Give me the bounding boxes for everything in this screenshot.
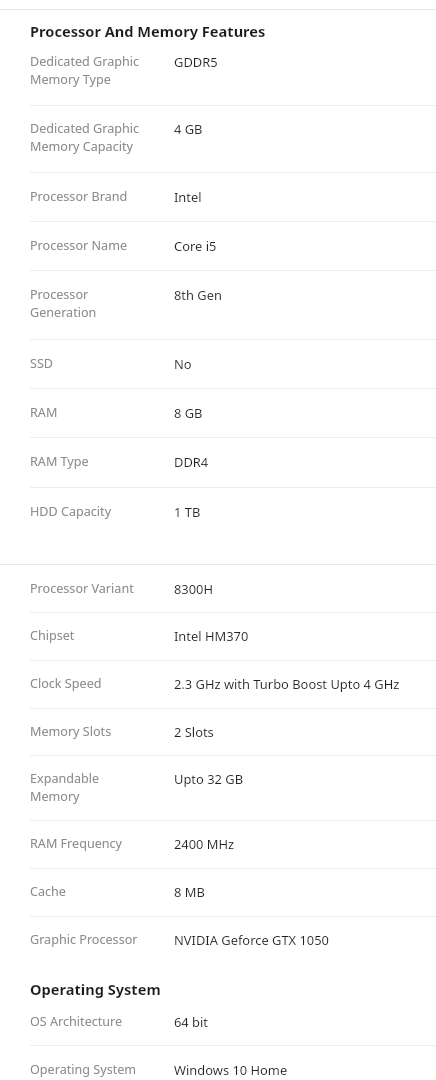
staticText: GDDR5: [174, 53, 424, 71]
staticText: NVIDIA Geforce GTX 1050: [174, 931, 424, 949]
staticText: Intel: [174, 188, 424, 206]
staticText: 2400 MHz: [174, 835, 424, 853]
button[interactable]: Processor Variant: [0, 565, 436, 612]
staticText: 2 Slots: [174, 723, 424, 741]
staticText: OS Architecture: [30, 1013, 174, 1030]
button[interactable]: Operating System: [0, 1046, 436, 1080]
staticText: Processor Variant: [30, 580, 174, 597]
button[interactable]: Dedicated Graphic Memory Type: [0, 48, 436, 105]
button[interactable]: HDD Capacity: [0, 488, 436, 536]
button[interactable]: Processor Generation: [0, 271, 436, 339]
staticText: Processor Name: [30, 237, 174, 254]
staticText: 8 MB: [174, 883, 424, 901]
staticText: Clock Speed: [30, 675, 174, 692]
button[interactable]: OS Architecture: [0, 1005, 436, 1045]
staticText: HDD Capacity: [30, 503, 174, 520]
staticText: Operating System: [30, 1061, 174, 1078]
button[interactable]: RAM: [0, 389, 436, 437]
button[interactable]: Graphic Processor: [0, 917, 436, 963]
button[interactable]: Chipset: [0, 613, 436, 660]
button[interactable]: Clock Speed: [0, 661, 436, 708]
staticText: Expandable Memory: [30, 770, 174, 805]
button[interactable]: Cache: [0, 869, 436, 916]
staticText: 8th Gen: [174, 286, 424, 304]
staticText: Dedicated Graphic Memory Type: [30, 53, 174, 88]
button[interactable]: Processor Name: [0, 222, 436, 270]
button[interactable]: Dedicated Graphic Memory Capacity: [0, 106, 436, 172]
staticText: DDR4: [174, 453, 424, 471]
staticText: Graphic Processor: [30, 931, 174, 948]
button[interactable]: SSD: [0, 340, 436, 388]
staticText: Operating System: [30, 979, 161, 999]
staticText: RAM Type: [30, 453, 174, 470]
staticText: Processor Generation: [30, 286, 174, 321]
staticText: Cache: [30, 883, 174, 900]
staticText: 2.3 GHz with Turbo Boost Upto 4 GHz: [174, 675, 424, 693]
staticText: 1 TB: [174, 503, 424, 521]
staticText: Dedicated Graphic Memory Capacity: [30, 120, 174, 155]
staticText: Core i5: [174, 237, 424, 255]
staticText: 4 GB: [174, 120, 424, 138]
button[interactable]: RAM Type: [0, 438, 436, 487]
staticText: RAM Frequency: [30, 835, 174, 852]
staticText: Intel HM370: [174, 627, 424, 645]
staticText: Chipset: [30, 627, 174, 644]
staticText: Processor And Memory Features: [30, 21, 266, 41]
button[interactable]: Processor Brand: [0, 173, 436, 221]
button[interactable]: RAM Frequency: [0, 821, 436, 868]
staticText: SSD: [30, 355, 174, 372]
staticText: 8 GB: [174, 404, 424, 422]
staticText: Windows 10 Home: [174, 1061, 424, 1079]
button[interactable]: Expandable Memory: [0, 756, 436, 820]
button[interactable]: Memory Slots: [0, 709, 436, 755]
staticText: No: [174, 355, 424, 373]
staticText: Upto 32 GB: [174, 770, 424, 788]
staticText: Processor Brand: [30, 188, 174, 205]
staticText: RAM: [30, 404, 174, 421]
staticText: 8300H: [174, 580, 424, 598]
staticText: 64 bit: [174, 1013, 424, 1031]
staticText: Memory Slots: [30, 723, 174, 740]
